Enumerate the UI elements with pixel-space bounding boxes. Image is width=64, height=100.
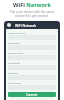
staticText: DNS server — [8, 81, 22, 84]
staticText: Gateway — [8, 71, 19, 74]
staticText: Password — [8, 41, 20, 44]
staticText: WiFi Network — [0, 1, 64, 9]
staticText: Pair your device with the same network t… — [0, 10, 64, 18]
staticText: Network name — [8, 31, 26, 34]
staticText: IP address — [8, 61, 21, 64]
button[interactable]: Connect — [8, 92, 56, 97]
staticText: Connect — [26, 93, 38, 97]
button[interactable]: Back — [7, 23, 11, 27]
staticText: Security type — [8, 51, 24, 54]
staticText: WiFi Network — [15, 23, 37, 27]
